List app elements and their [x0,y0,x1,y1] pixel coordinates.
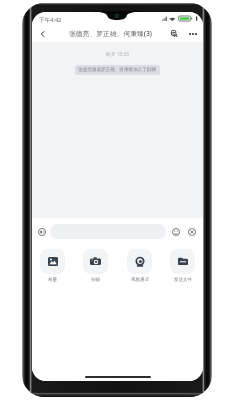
staticText: 拍摄 [91,277,100,283]
button[interactable]: Emoji [169,225,182,238]
staticText: 视频通话 [131,277,149,283]
staticText: 张德亮、罗正雄、何秉臻(3) [69,29,152,38]
staticText: 昨天 15:33 [32,51,203,58]
button[interactable]: Back [34,25,50,42]
button[interactable]: Voice input [35,225,48,238]
button[interactable]: 发送文件 [170,249,195,283]
button[interactable]: More options [185,26,200,41]
staticText: 张德亮邀请罗正雄、何秉臻加入了群聊 [78,67,157,73]
staticText: 相册 [48,277,57,283]
button[interactable]: 相册 [40,249,65,283]
button[interactable]: 视频通话 [127,249,152,283]
button[interactable]: 拍摄 [83,249,108,283]
button[interactable]: Close panel [185,225,198,238]
staticText: 下午4:42 [39,16,62,24]
staticText: 发送文件 [174,277,192,283]
button[interactable]: Group members [167,26,182,41]
